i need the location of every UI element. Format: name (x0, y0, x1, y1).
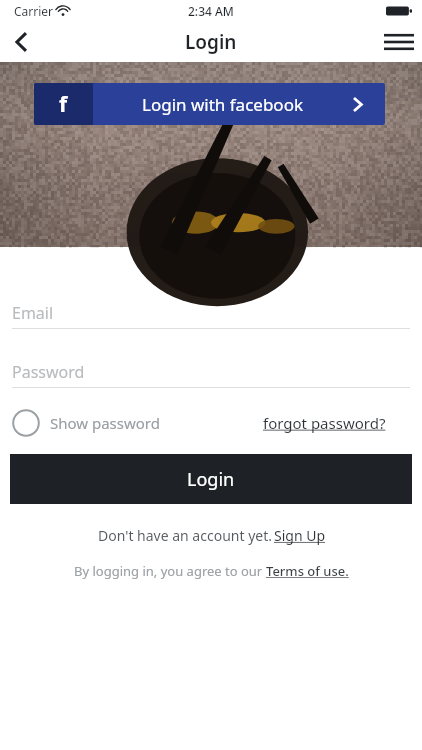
button[interactable]: Sign Up (274, 526, 326, 545)
staticText: Email (12, 302, 54, 324)
staticText: Carrier (14, 3, 54, 19)
button[interactable]: Password (0, 357, 422, 388)
button[interactable]: Menu (376, 22, 422, 62)
staticText: Sign Up (274, 526, 326, 545)
button[interactable]: Back (0, 22, 44, 62)
staticText: Terms of use. (266, 562, 349, 580)
staticText: Login with facebook (142, 93, 304, 116)
staticText: f (59, 90, 68, 119)
staticText: forgot password? (263, 413, 386, 433)
button[interactable]: f (34, 83, 385, 125)
button[interactable]: Show password (12, 409, 160, 437)
button[interactable]: Terms of use. (266, 562, 349, 580)
button[interactable]: forgot password? (263, 413, 386, 433)
staticText: Show password (50, 413, 160, 433)
staticText: Don't have an account yet. (96, 526, 274, 545)
staticText: 2:34 AM (188, 3, 234, 19)
staticText: Password (12, 361, 85, 383)
staticText: By logging in, you agree to our (74, 562, 266, 580)
staticText: Login (185, 29, 237, 55)
button[interactable]: Email (0, 298, 422, 329)
staticText: Login (187, 467, 235, 492)
button[interactable]: Login (10, 454, 412, 504)
